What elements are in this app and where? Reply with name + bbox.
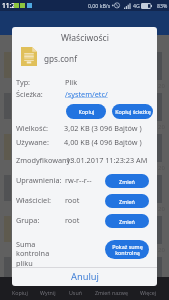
staticText: root xyxy=(65,195,80,205)
button[interactable]: /system/etc/ xyxy=(65,89,108,99)
button[interactable]: Kopiuj ścieżkę xyxy=(112,104,153,119)
staticText: Ścieżka: xyxy=(16,89,43,99)
button[interactable]: Anuluj xyxy=(12,267,157,286)
button[interactable]: Zmień xyxy=(105,194,149,208)
button[interactable]: Kopiuj xyxy=(11,284,29,300)
staticText: Wielkość: xyxy=(16,123,48,133)
staticText: Używane: xyxy=(16,137,49,147)
staticText: Grupa: xyxy=(16,215,40,225)
staticText: Właściciel: xyxy=(16,195,51,205)
button[interactable]: Zmień xyxy=(105,214,149,228)
staticText: Anuluj xyxy=(71,270,99,283)
staticText: Typ: xyxy=(16,77,31,87)
staticText: Plik xyxy=(65,77,78,87)
staticText: 13.01.2017 11:23:23 AM xyxy=(66,155,148,165)
staticText: Zmień xyxy=(119,218,135,225)
staticText: Uprawnienia: xyxy=(16,175,62,185)
button[interactable]: Zmień xyxy=(105,174,149,188)
staticText: Zmień xyxy=(119,178,135,185)
button[interactable]: Usuń xyxy=(68,284,83,300)
staticText: Pokaż sumę kontrolną xyxy=(112,243,143,257)
staticText: Zmień nazwę xyxy=(95,289,128,296)
staticText: 11:23 xyxy=(2,1,19,10)
staticText: Kopiuj ścieżkę xyxy=(115,108,151,115)
button[interactable]: Wytnij xyxy=(39,284,57,300)
staticText: root xyxy=(65,215,80,225)
button[interactable]: Kopiuj xyxy=(66,104,106,119)
staticText: Usuń xyxy=(69,289,82,296)
button[interactable]: Więcej xyxy=(139,284,158,300)
staticText: 0,00 kB/s xyxy=(88,2,111,9)
button[interactable]: Pokaż sumę kontrolną xyxy=(105,240,149,259)
staticText: 4,00 KB (4 096 Bajtów ) xyxy=(64,137,142,147)
staticText: /system/etc/ xyxy=(65,89,108,99)
staticText: Kopiuj xyxy=(12,289,28,296)
staticText: 83% xyxy=(157,2,168,9)
staticText: Suma kontrolna pliku xyxy=(16,239,50,269)
staticText: Więcej xyxy=(140,289,157,296)
staticText: rw-r--r-- xyxy=(65,175,92,185)
staticText: Zmień xyxy=(119,198,135,205)
staticText: Zmodyfikowany: xyxy=(16,155,73,165)
button[interactable]: Zmień nazwę xyxy=(94,284,129,300)
staticText: Wytnij xyxy=(40,289,56,296)
staticText: Właściwości xyxy=(61,32,109,44)
staticText: gps.conf xyxy=(44,53,77,64)
staticText: 4G xyxy=(133,2,140,9)
staticText: 3,02 KB (3 096 Bajtów ) xyxy=(64,123,142,133)
staticText: Kopiuj xyxy=(78,108,95,115)
